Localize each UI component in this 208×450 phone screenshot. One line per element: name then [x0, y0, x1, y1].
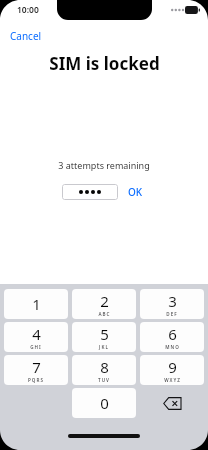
staticText: 1 — [32, 294, 41, 314]
staticText: OK — [128, 185, 143, 199]
button[interactable]: 7 — [4, 355, 68, 385]
staticText: 0 — [100, 393, 109, 413]
staticText: 2 — [100, 291, 109, 311]
staticText: SIM is locked — [49, 52, 160, 75]
staticText: DEF — [166, 311, 178, 317]
staticText: 4 — [32, 324, 41, 344]
staticText: JKL — [99, 344, 109, 350]
button[interactable] — [62, 184, 118, 200]
staticText: 6 — [168, 324, 177, 344]
staticText: TUV — [98, 377, 110, 383]
staticText: PQRS — [28, 377, 44, 383]
staticText: 8 — [100, 357, 109, 377]
staticText: 3 attempts remaining — [58, 159, 150, 171]
staticText: GHI — [30, 344, 42, 350]
staticText: 9 — [168, 357, 177, 377]
button[interactable]: 3 — [140, 289, 204, 319]
button[interactable]: 1 — [4, 289, 68, 319]
button[interactable]: 2 — [72, 289, 136, 319]
button[interactable]: 9 — [140, 355, 204, 385]
button[interactable]: 6 — [140, 322, 204, 352]
staticText: Cancel — [10, 29, 42, 43]
button[interactable]: OK — [125, 183, 146, 201]
button[interactable]: 8 — [72, 355, 136, 385]
button[interactable]: 4 — [4, 322, 68, 352]
staticText: 10:00 — [17, 4, 39, 16]
button[interactable]: Cancel — [7, 27, 45, 45]
staticText: MNO — [165, 344, 180, 350]
staticText: WXYZ — [164, 377, 181, 383]
staticText: ABC — [98, 311, 111, 317]
staticText: 7 — [32, 357, 41, 377]
staticText: 3 — [168, 291, 177, 311]
staticText: 5 — [100, 324, 109, 344]
button[interactable]: 5 — [72, 322, 136, 352]
button[interactable]: Delete — [140, 388, 204, 418]
button[interactable]: 0 — [72, 388, 136, 418]
